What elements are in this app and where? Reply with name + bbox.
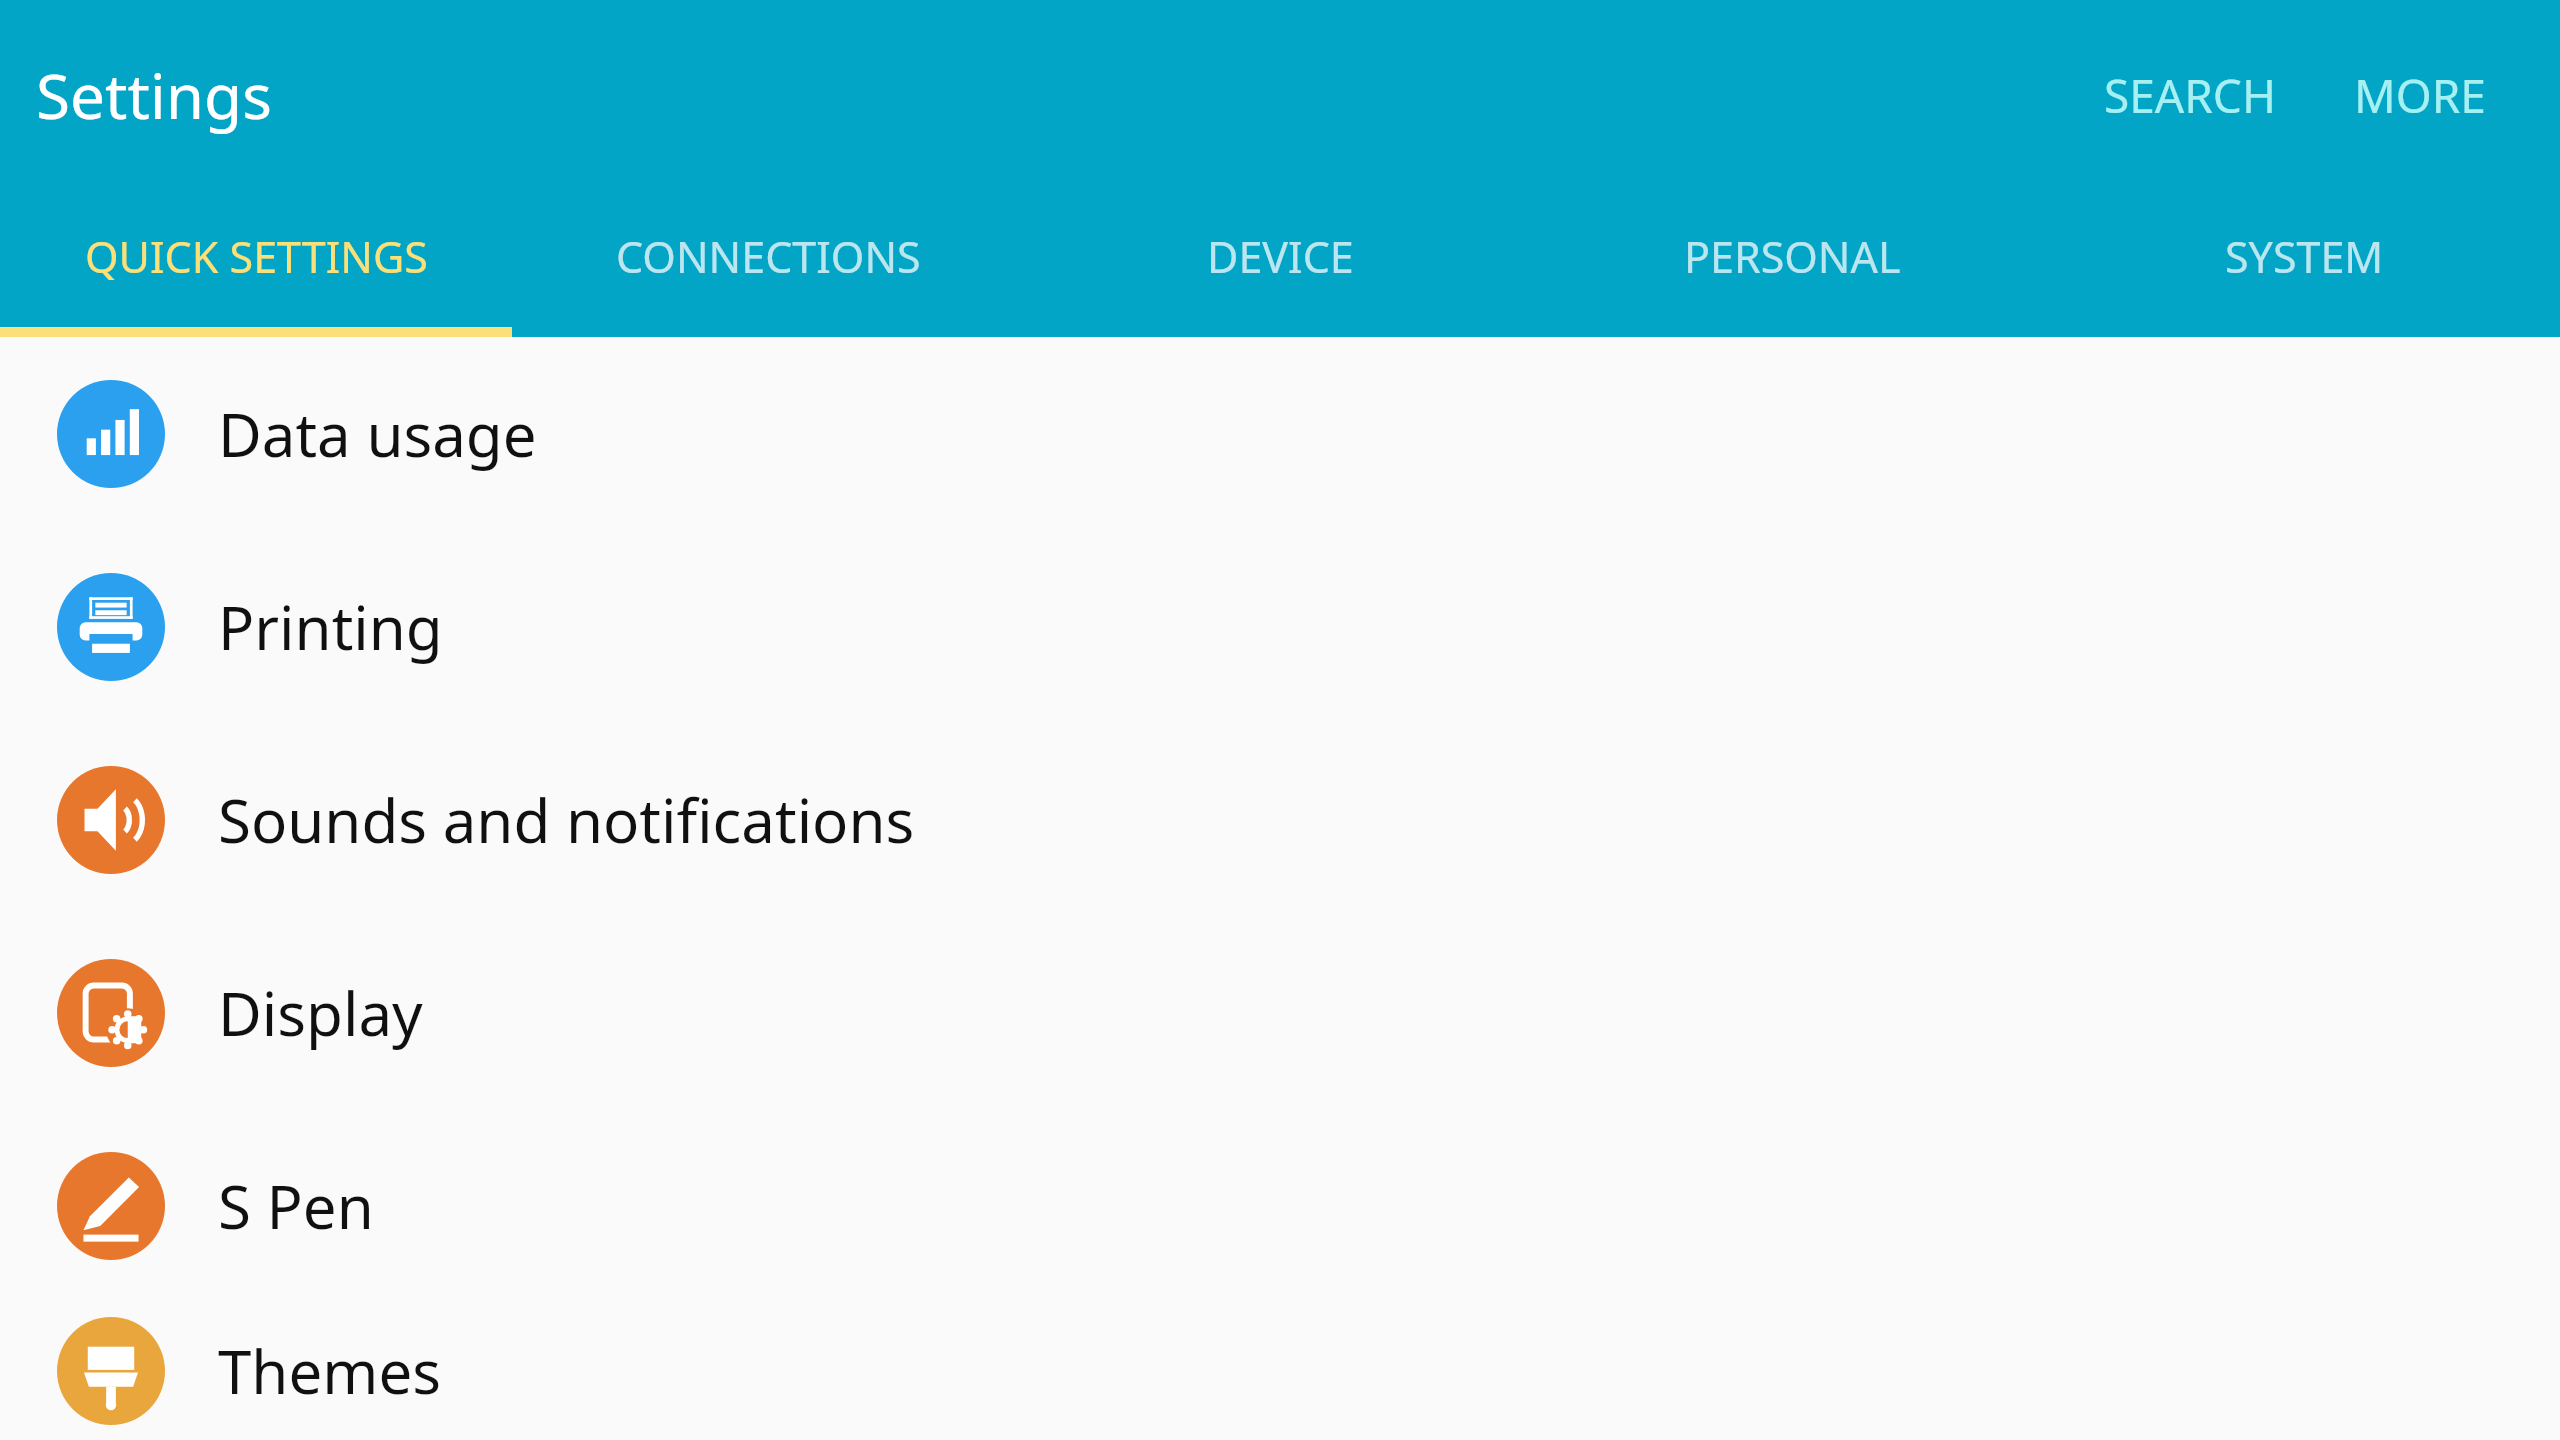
button[interactable]: Themes xyxy=(0,1302,2560,1440)
staticText: CONNECTIONS xyxy=(616,227,921,286)
staticText: DEVICE xyxy=(1207,227,1354,286)
staticText: SEARCH xyxy=(2104,64,2276,127)
button[interactable]: Data usage xyxy=(0,337,2560,530)
button[interactable]: MORE xyxy=(2328,44,2512,147)
button[interactable]: CONNECTIONS xyxy=(512,190,1024,337)
button[interactable]: DEVICE xyxy=(1024,190,1536,337)
staticText: SYSTEM xyxy=(2225,227,2384,286)
staticText: PERSONAL xyxy=(1684,227,1901,286)
button[interactable]: Sounds and notifications xyxy=(0,723,2560,916)
staticText: Printing xyxy=(218,586,443,668)
staticText: Sounds and notifications xyxy=(218,779,915,861)
button[interactable]: S Pen xyxy=(0,1109,2560,1302)
staticText: S Pen xyxy=(218,1165,374,1247)
button[interactable]: Printing xyxy=(0,530,2560,723)
button[interactable]: SEARCH xyxy=(2078,44,2302,147)
button[interactable]: Display xyxy=(0,916,2560,1109)
button[interactable]: SYSTEM xyxy=(2048,190,2560,337)
staticText: QUICK SETTINGS xyxy=(85,227,428,286)
staticText: Data usage xyxy=(218,393,537,475)
button[interactable]: QUICK SETTINGS xyxy=(0,190,512,337)
staticText: Display xyxy=(218,972,423,1054)
staticText: MORE xyxy=(2354,64,2486,127)
button[interactable]: Settings xyxy=(12,35,296,155)
staticText: Themes xyxy=(218,1330,441,1412)
staticText: Settings xyxy=(36,53,272,137)
button[interactable]: PERSONAL xyxy=(1536,190,2048,337)
